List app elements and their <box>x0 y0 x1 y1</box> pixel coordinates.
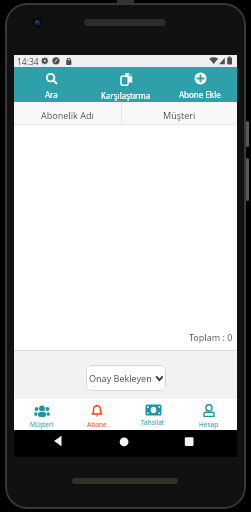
staticText: Karşılaştırma <box>101 90 151 101</box>
staticText: Müşteri <box>30 420 54 429</box>
button[interactable]: Abone <box>69 399 125 430</box>
staticText: Abone Ekle <box>179 89 221 100</box>
staticText: Tahsilat <box>141 418 165 427</box>
staticText: 14:34 <box>17 56 39 68</box>
staticText: Toplam : 0 <box>189 331 233 343</box>
staticText: Onay Bekleyen <box>89 372 152 384</box>
button[interactable]: Abone Ekle <box>163 67 237 102</box>
button[interactable]: Karşılaştırma <box>89 67 163 102</box>
button[interactable]: Onay Bekleyen <box>86 365 166 391</box>
staticText: Ara <box>45 89 58 100</box>
staticText: Abonelik Adı <box>41 109 94 121</box>
staticText: Müşteri <box>163 109 196 121</box>
button[interactable]: Tahsilat <box>125 399 181 430</box>
button[interactable]: Ara <box>14 67 89 102</box>
button[interactable]: Müşteri <box>14 399 69 430</box>
button[interactable]: Hesap <box>181 399 237 430</box>
staticText: Abone <box>87 420 107 429</box>
staticText: Hesap <box>199 420 219 429</box>
